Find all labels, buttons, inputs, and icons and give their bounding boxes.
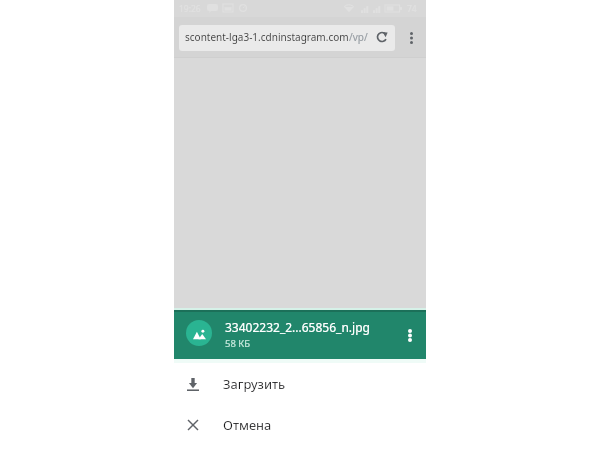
- button[interactable]: More options: [399, 26, 423, 50]
- button[interactable]: File options: [399, 324, 421, 346]
- staticText: /vp/: [349, 30, 368, 44]
- staticText: 33402232_2...65856_n.jpg: [225, 319, 370, 335]
- staticText: Отмена: [223, 416, 272, 434]
- button[interactable]: 33402232_2...65856_n.jpg: [174, 310, 426, 360]
- button[interactable]: scontent-lga3-1.cdninstagram.com: [179, 25, 395, 51]
- staticText: 58 КБ: [225, 337, 251, 350]
- staticText: Загрузить: [223, 375, 286, 393]
- button[interactable]: Reload page: [375, 30, 389, 44]
- button[interactable]: Загрузить: [0, 364, 600, 404]
- staticText: scontent-lga3-1.cdninstagram.com: [185, 30, 349, 44]
- button[interactable]: Отмена: [0, 405, 600, 445]
